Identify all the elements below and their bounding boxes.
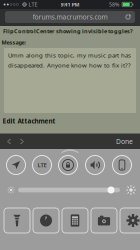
button[interactable]: Address bar, forums.macrumors.com: [5, 11, 135, 23]
button[interactable]: Edit Attachment: [2, 117, 55, 125]
staticText: Edit Attachment: [2, 117, 55, 125]
button[interactable]: Camera: [90, 207, 118, 234]
staticText: Message:: [1, 39, 26, 46]
button[interactable]: Timer: [32, 207, 60, 234]
button[interactable]: Calculator: [61, 207, 89, 234]
staticText: forums.macrumors.com: [32, 12, 107, 22]
button[interactable]: Next field: [18, 137, 27, 146]
button[interactable]: Settings: [119, 207, 140, 234]
button[interactable]: Airplane Mode: [5, 154, 26, 175]
staticText: 9:41 PM: [60, 1, 79, 8]
button[interactable]: Brightness: [18, 186, 120, 194]
button[interactable]: Flashlight: [3, 207, 31, 234]
button[interactable]: Done: [116, 137, 133, 146]
button[interactable]: Cellular Data: [31, 154, 52, 175]
button[interactable]: Vibrate: [111, 154, 132, 175]
staticText: LTE: [37, 161, 46, 169]
button[interactable]: Mute: [84, 154, 105, 175]
staticText: disappeared. Anyone know how to fix it??: [8, 61, 131, 69]
staticText: FlipControlCenter showing invisible togg…: [3, 27, 133, 35]
button[interactable]: Previous field: [4, 137, 13, 146]
button[interactable]: Rotation Lock: [57, 154, 78, 175]
staticText: Umm along this topic, my music part has: [8, 51, 131, 59]
staticText: Done: [116, 137, 133, 146]
staticText: 58%: [109, 1, 119, 8]
staticText: LTE: [28, 1, 37, 8]
